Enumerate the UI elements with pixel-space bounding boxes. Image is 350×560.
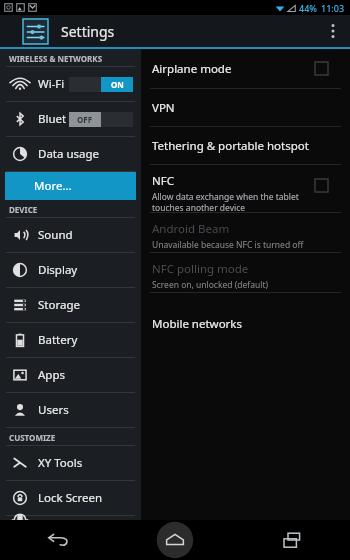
staticText: Tethering & portable hotspot [152, 138, 309, 154]
staticText: 11:03 [321, 2, 345, 14]
button[interactable]: Users [0, 393, 141, 428]
staticText: Settings [61, 22, 115, 41]
button[interactable]: Bluet [0, 102, 141, 137]
staticText: Airplane mode [152, 61, 232, 77]
button[interactable]: About Xylon [0, 516, 141, 520]
staticText: Apps [38, 367, 66, 383]
button[interactable]: Settings [0, 15, 350, 47]
button[interactable]: Data usage [0, 137, 141, 172]
button[interactable]: Recent apps [233, 520, 350, 560]
staticText: Lock Screen [38, 490, 103, 506]
button[interactable]: Apps [0, 358, 141, 393]
button[interactable]: Toggle checkbox [315, 62, 328, 75]
staticText: Mobile networks [152, 316, 243, 332]
staticText: Data usage [38, 146, 100, 162]
staticText: Wi-Fi [38, 76, 65, 92]
staticText: Unavailable because NFC is turned off [152, 239, 304, 251]
button[interactable]: VPN [141, 89, 350, 127]
button[interactable]: Sound [0, 218, 141, 253]
staticText: More... [34, 178, 72, 194]
staticText: Storage [38, 297, 80, 313]
staticText: Battery [38, 332, 78, 348]
staticText: CUSTOMIZE [9, 432, 56, 443]
staticText: WIRELESS & NETWORKS [9, 53, 103, 64]
button[interactable]: Tethering & portable hotspot [141, 127, 350, 165]
button[interactable]: Battery [0, 323, 141, 358]
button[interactable]: Lock Screen [0, 481, 141, 516]
staticText: Sound [38, 227, 73, 243]
button[interactable]: XY Tools [0, 446, 141, 481]
staticText: Android Beam [152, 221, 230, 237]
button[interactable]: Toggle checkbox [315, 179, 328, 192]
button[interactable]: More options [316, 15, 350, 47]
button[interactable]: Mobile networks [141, 293, 350, 342]
button[interactable]: Display [0, 253, 141, 288]
staticText: DEVICE [9, 204, 38, 215]
button[interactable]: Airplane mode [141, 49, 350, 89]
staticText: NFC polling mode [152, 261, 249, 277]
staticText: NFC [152, 173, 174, 189]
staticText: Users [38, 402, 69, 418]
button[interactable]: NFC [141, 165, 350, 213]
button[interactable]: More... [5, 172, 136, 200]
staticText: 44% [299, 2, 317, 14]
button[interactable]: Storage [0, 288, 141, 323]
button[interactable]: Wi-Fi [0, 67, 141, 102]
staticText: VPN [152, 100, 175, 116]
staticText: ON [111, 79, 124, 90]
staticText: Screen on, unlocked (default) [152, 279, 269, 291]
staticText: Display [38, 262, 78, 278]
staticText: Bluet [38, 111, 67, 127]
staticText: XY Tools [38, 455, 83, 471]
staticText: Allow data exchange when the tablet touc… [152, 191, 299, 212]
button[interactable]: Home [116, 520, 233, 560]
button[interactable]: Back [0, 520, 116, 560]
staticText: OFF [77, 114, 93, 125]
button[interactable]: NFC polling mode [141, 253, 350, 293]
button[interactable]: Android Beam [141, 213, 350, 253]
